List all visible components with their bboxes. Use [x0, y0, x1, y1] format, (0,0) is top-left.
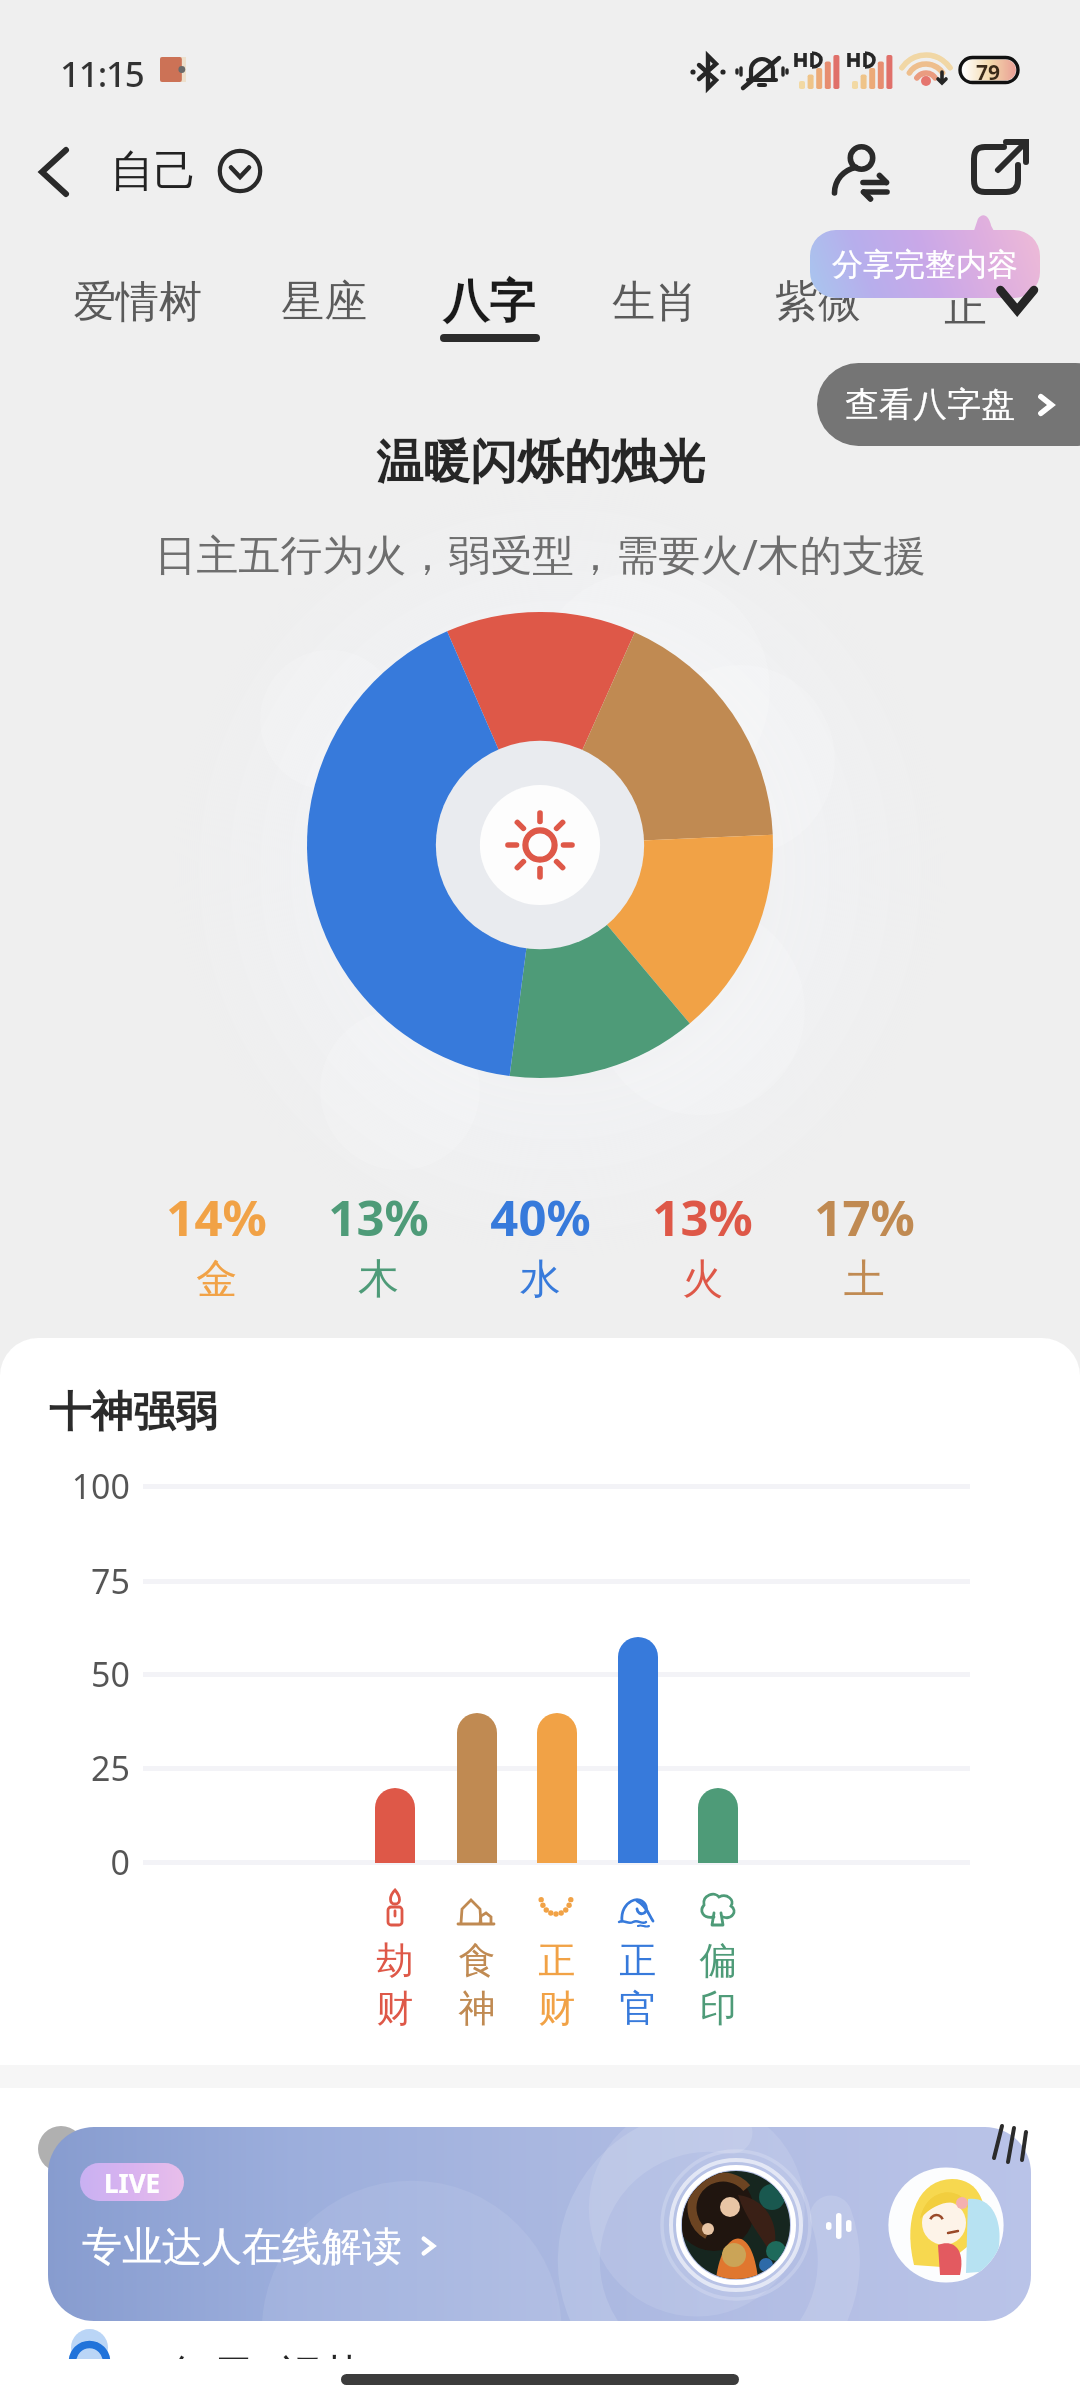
staticText: 50 [30, 1651, 130, 1697]
staticText: 100 [30, 1463, 130, 1509]
button[interactable]: 40% [470, 1184, 610, 1306]
staticText: 17% [814, 1184, 915, 1251]
staticText: 星座 [281, 275, 367, 329]
staticText: 日主五行为火，弱受型，需要火/木的支援 [154, 525, 926, 582]
staticText: 爱情树 [73, 275, 202, 329]
staticText: 25 [30, 1745, 130, 1791]
button[interactable]: 查看八字盘 [817, 363, 1080, 446]
staticText: 分享完整内容 [832, 245, 1018, 284]
staticText: 查看八字盘 [845, 383, 1015, 426]
staticText: 温暖闪烁的烛光 [376, 433, 705, 492]
button[interactable]: Share [960, 135, 1040, 205]
button[interactable]: 紫微 [775, 265, 861, 339]
staticText: 生肖 [612, 275, 698, 329]
button[interactable]: 爱情树 [73, 265, 202, 339]
staticText: 金 [196, 1254, 237, 1306]
button[interactable]: 每日 运势 [0, 2322, 1080, 2359]
staticText: 正 财 [517, 1937, 597, 2032]
staticText: 土 [844, 1254, 885, 1306]
staticText: 紫微 [775, 275, 861, 329]
staticText: 自己 [110, 144, 198, 199]
staticText: 正 官 [598, 1937, 678, 2032]
staticText: 木 [358, 1254, 399, 1306]
button[interactable]: 14% [146, 1184, 286, 1306]
staticText: 13% [328, 1184, 429, 1251]
button[interactable]: 17% [794, 1184, 934, 1306]
staticText: 八字 [443, 273, 535, 331]
staticText: LIVE [104, 2165, 161, 2200]
button[interactable]: 食 神 [437, 1879, 517, 2029]
button[interactable]: Back [18, 136, 90, 208]
staticText: 火 [682, 1254, 723, 1306]
staticText: 偏 印 [678, 1937, 758, 2032]
button[interactable]: 正 官 [598, 1879, 678, 2029]
staticText: 75 [30, 1558, 130, 1604]
staticText: 专业达人在线解读 [82, 2221, 402, 2271]
staticText: 水 [520, 1254, 561, 1306]
staticText: 食 神 [437, 1937, 517, 2032]
button[interactable]: Switch profile [820, 135, 900, 205]
staticText: 0 [30, 1839, 130, 1885]
staticText: 正 [944, 280, 987, 334]
staticText: 每日 运势 [168, 2344, 367, 2359]
staticText: 十神强弱 [49, 1386, 217, 1439]
staticText: 14% [166, 1184, 267, 1251]
staticText: 79 [976, 58, 1001, 87]
button[interactable]: 八字 [443, 265, 535, 339]
staticText: 劫 财 [355, 1937, 435, 2032]
button[interactable]: 自己 [110, 140, 262, 202]
button[interactable]: 13% [308, 1184, 448, 1306]
button[interactable]: 正 财 [517, 1879, 597, 2029]
staticText: 11:15 [60, 50, 144, 98]
button[interactable]: 偏 印 [678, 1879, 758, 2029]
button[interactable]: 13% [632, 1184, 772, 1306]
button[interactable]: 劫 财 [355, 1879, 435, 2029]
button[interactable]: LIVE [48, 2127, 1031, 2321]
button[interactable]: 生肖 [612, 265, 698, 339]
staticText: 40% [490, 1184, 591, 1251]
button[interactable]: Expand tabs [990, 275, 1048, 323]
button[interactable]: 星座 [281, 265, 367, 339]
staticText: 13% [652, 1184, 753, 1251]
